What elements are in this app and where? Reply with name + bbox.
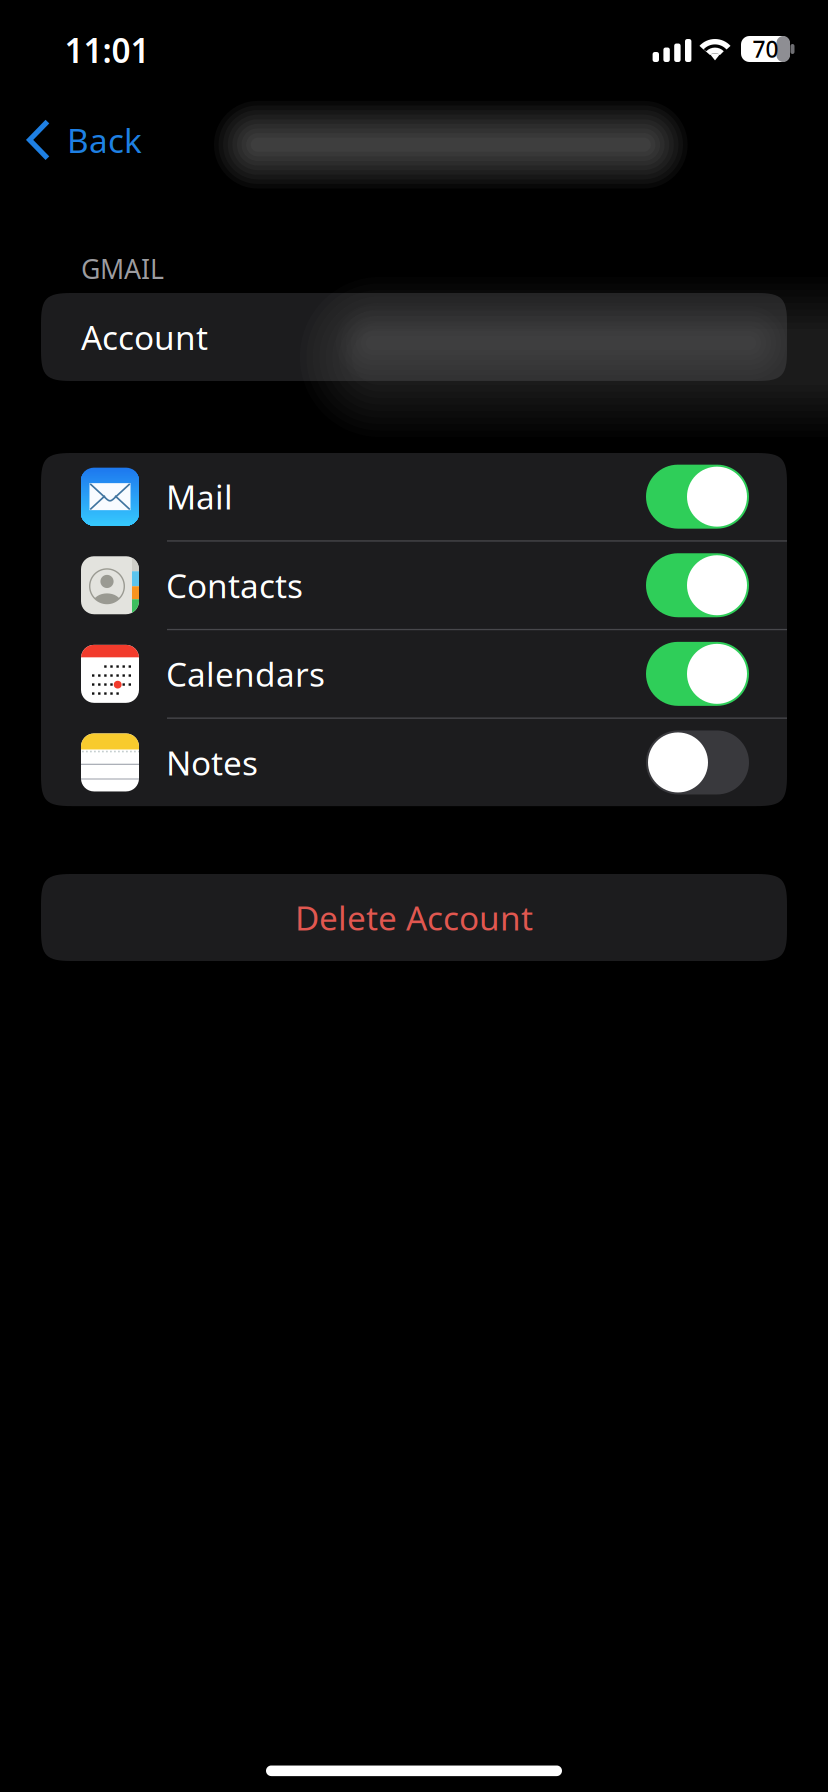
staticText: 11:01 — [64, 28, 149, 72]
button[interactable]: Notes — [41, 719, 787, 806]
staticText: Notes — [166, 740, 258, 785]
staticText: 70 — [752, 34, 778, 64]
button[interactable]: Account — [41, 293, 787, 381]
staticText: Calendars — [166, 652, 325, 696]
button[interactable]: Back — [0, 96, 162, 184]
staticText: Account — [81, 315, 208, 359]
staticText: GMAIL — [81, 251, 164, 286]
staticText: Mail — [166, 474, 233, 519]
staticText: Delete Account — [295, 895, 533, 940]
button[interactable]: Contacts — [41, 542, 787, 629]
staticText: Contacts — [166, 563, 303, 607]
button[interactable]: Delete Account — [41, 874, 787, 961]
button[interactable]: Mail — [41, 453, 787, 540]
button[interactable]: Calendars — [41, 630, 787, 717]
staticText: Back — [67, 118, 142, 162]
